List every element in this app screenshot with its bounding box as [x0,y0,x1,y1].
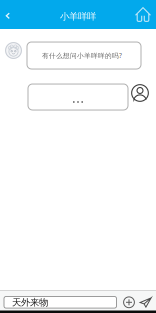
button[interactable]: Send [139,296,152,309]
staticText: 天外来物 [12,297,48,308]
button[interactable]: Back [0,0,14,29]
staticText: 有什么想问小羊咩咩的吗? [42,51,122,60]
staticText: 小羊咩咩 [60,11,96,22]
button[interactable]: Add [122,296,135,309]
button[interactable]: Home [133,0,153,29]
